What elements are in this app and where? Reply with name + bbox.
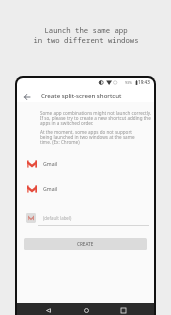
staticText: Gmail <box>43 185 58 192</box>
staticText: Launch the same app in two different win… <box>33 25 139 45</box>
staticText: 19:43 <box>138 79 150 85</box>
staticText: Gmail <box>43 160 58 167</box>
staticText: Create split-screen shortcut <box>41 91 122 99</box>
staticText: 93% <box>125 80 133 85</box>
button[interactable]: Back <box>41 303 55 315</box>
button[interactable]: Gmail <box>17 176 154 201</box>
staticText: Some app combinations might not launch c… <box>40 110 152 126</box>
staticText: (default label) <box>43 215 72 221</box>
button[interactable]: Home <box>79 303 93 315</box>
button[interactable]: (default label) <box>17 209 154 231</box>
button[interactable]: Recents <box>116 303 130 315</box>
button[interactable]: Navigate up <box>20 90 33 103</box>
staticText: At the moment, some apps do not support … <box>40 129 135 145</box>
staticText: CREATE <box>77 241 94 247</box>
button[interactable]: CREATE <box>24 238 147 250</box>
button[interactable]: Gmail <box>17 151 154 176</box>
